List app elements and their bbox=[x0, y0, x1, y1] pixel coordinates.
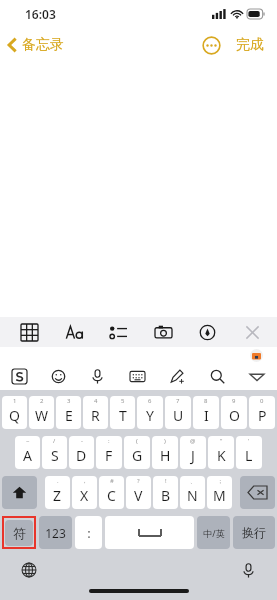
staticText: P bbox=[258, 406, 267, 425]
staticText: F bbox=[105, 446, 113, 465]
staticText: A bbox=[23, 446, 32, 465]
staticText: 中/英 bbox=[203, 527, 225, 539]
staticText: : bbox=[87, 524, 91, 542]
button[interactable]: 8 bbox=[193, 396, 219, 429]
staticText: 7 bbox=[176, 397, 180, 405]
staticText: C bbox=[107, 486, 116, 505]
button[interactable]: ； bbox=[207, 476, 232, 509]
staticText: . bbox=[57, 477, 59, 485]
button[interactable]: / bbox=[42, 436, 67, 469]
staticText: , bbox=[84, 477, 86, 485]
button[interactable]: Dictation bbox=[236, 558, 260, 582]
staticText: J bbox=[191, 446, 195, 465]
staticText: / bbox=[53, 437, 56, 445]
button[interactable]: 123 bbox=[39, 516, 72, 549]
button[interactable]: ' bbox=[236, 436, 262, 469]
button[interactable]: 2 bbox=[29, 396, 54, 429]
staticText: 换行 bbox=[242, 525, 266, 540]
staticText: W bbox=[35, 406, 49, 425]
button[interactable]: ! bbox=[153, 476, 178, 509]
staticText: V bbox=[134, 486, 143, 505]
staticText: 0 bbox=[260, 397, 264, 405]
button[interactable]: Search bbox=[197, 363, 237, 390]
staticText: O bbox=[229, 406, 240, 425]
staticText: 16:03 bbox=[25, 6, 56, 22]
staticText: 、 bbox=[190, 477, 196, 485]
staticText: ' bbox=[248, 437, 250, 445]
button[interactable]: 完成 bbox=[233, 32, 267, 58]
staticText: R bbox=[91, 406, 100, 425]
staticText: 完成 bbox=[236, 36, 264, 54]
button[interactable]: Close bbox=[239, 319, 265, 345]
staticText: 2 bbox=[40, 397, 44, 405]
button[interactable]: : bbox=[75, 516, 102, 549]
button[interactable]: Backspace bbox=[240, 476, 275, 509]
button[interactable]: Table bbox=[16, 319, 42, 345]
button[interactable]: Sogou bbox=[0, 363, 39, 390]
staticText: 6 bbox=[148, 397, 152, 405]
staticText: ； bbox=[217, 477, 223, 485]
staticText: 9 bbox=[232, 397, 236, 405]
button[interactable]: Keyboard bbox=[117, 363, 157, 390]
staticText: 5 bbox=[121, 397, 125, 405]
button[interactable]: 备忘录 bbox=[0, 32, 72, 58]
button[interactable]: 1 bbox=[2, 396, 27, 429]
button[interactable]: " bbox=[208, 436, 234, 469]
staticText: 1 bbox=[13, 397, 17, 405]
staticText: 符 bbox=[13, 525, 26, 541]
button[interactable]: Text format bbox=[61, 319, 87, 345]
button[interactable]: 3 bbox=[56, 396, 81, 429]
staticText: B bbox=[161, 486, 171, 505]
button[interactable]: 9 bbox=[221, 396, 247, 429]
button[interactable]: 符 bbox=[5, 520, 33, 546]
staticText: ? bbox=[137, 477, 140, 485]
button[interactable]: 0 bbox=[249, 396, 275, 429]
staticText: X bbox=[80, 486, 89, 505]
button[interactable]: 6 bbox=[137, 396, 163, 429]
button[interactable]: Switch keyboard bbox=[17, 558, 41, 582]
button[interactable]: @ bbox=[180, 436, 206, 469]
staticText: Y bbox=[146, 406, 154, 425]
staticText: 3 bbox=[67, 397, 71, 405]
button[interactable]: Shift bbox=[2, 476, 37, 509]
staticText: Z bbox=[53, 486, 62, 505]
staticText: U bbox=[173, 406, 184, 425]
staticText: ( bbox=[136, 437, 138, 445]
button[interactable]: 5 bbox=[110, 396, 135, 429]
button[interactable]: 、 bbox=[180, 476, 205, 509]
button[interactable]: Camera bbox=[150, 319, 176, 345]
button[interactable]: Markup bbox=[194, 319, 220, 345]
button[interactable]: ) bbox=[152, 436, 178, 469]
button[interactable]: Emoji bbox=[39, 363, 78, 390]
staticText: G bbox=[132, 446, 143, 465]
staticText: # bbox=[110, 477, 114, 485]
staticText: " bbox=[220, 437, 223, 445]
button[interactable]: 4 bbox=[83, 396, 108, 429]
button[interactable]: Handwriting bbox=[157, 363, 197, 390]
staticText: I bbox=[204, 406, 209, 425]
staticText: 123 bbox=[45, 525, 66, 541]
button[interactable]: 7 bbox=[165, 396, 191, 429]
button[interactable]: , bbox=[72, 476, 97, 509]
staticText: L bbox=[245, 446, 253, 465]
staticText: D bbox=[76, 446, 87, 465]
button[interactable]: ? bbox=[126, 476, 151, 509]
staticText: : bbox=[108, 437, 110, 445]
button[interactable]: Voice bbox=[78, 363, 117, 390]
staticText: ~ bbox=[26, 437, 30, 445]
button[interactable]: # bbox=[99, 476, 124, 509]
staticText: E bbox=[65, 406, 73, 425]
button[interactable]: More options bbox=[202, 36, 221, 55]
button[interactable]: ( bbox=[124, 436, 150, 469]
button[interactable]: Space bbox=[105, 516, 194, 549]
button[interactable]: . bbox=[45, 476, 70, 509]
button[interactable]: : bbox=[96, 436, 122, 469]
staticText: @ bbox=[190, 437, 196, 445]
button[interactable]: - bbox=[69, 436, 94, 469]
button[interactable]: 中/英 bbox=[197, 516, 230, 549]
staticText: ! bbox=[165, 477, 167, 485]
button[interactable]: Collapse bbox=[237, 363, 277, 390]
button[interactable]: ~ bbox=[15, 436, 40, 469]
button[interactable]: Checklist bbox=[105, 319, 131, 345]
button[interactable]: 换行 bbox=[233, 516, 275, 549]
